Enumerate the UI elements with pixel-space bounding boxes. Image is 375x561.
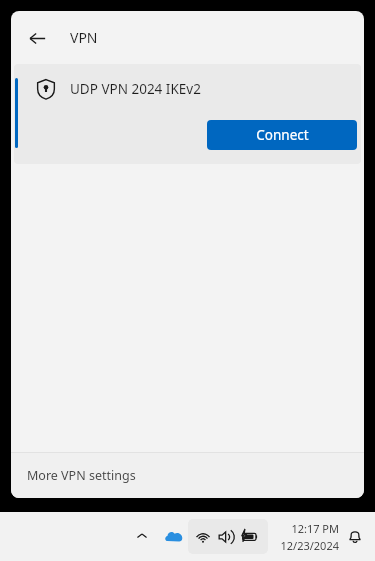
- button[interactable]: OneDrive: [159, 522, 187, 550]
- button[interactable]: Show hidden icons: [128, 522, 156, 550]
- staticText: UDP VPN 2024 IKEv2: [70, 80, 201, 98]
- button[interactable]: Back: [20, 21, 54, 55]
- button[interactable]: Network, sound and battery settings: [188, 519, 268, 554]
- staticText: 12/23/2024: [280, 538, 339, 553]
- button[interactable]: 12:17 PM: [277, 519, 339, 554]
- button[interactable]: Notifications: [342, 523, 368, 549]
- button[interactable]: Connect: [207, 120, 357, 150]
- staticText: Connect: [256, 126, 309, 144]
- button[interactable]: UDP VPN 2024 IKEv2: [14, 64, 361, 164]
- staticText: VPN: [70, 28, 98, 47]
- button[interactable]: More VPN settings: [11, 452, 364, 498]
- staticText: 12:17 PM: [291, 521, 339, 536]
- staticText: More VPN settings: [27, 467, 136, 484]
